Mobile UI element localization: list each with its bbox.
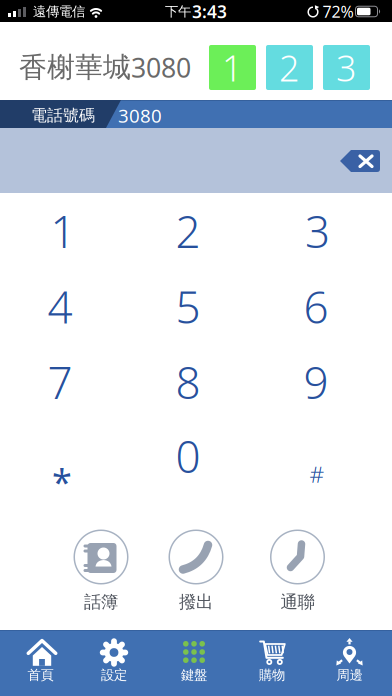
button[interactable]: 8 xyxy=(133,347,243,417)
button[interactable]: 1 xyxy=(209,45,256,90)
button[interactable]: 話簿 xyxy=(56,525,146,615)
staticText: 4 xyxy=(47,277,72,336)
staticText: 下午 xyxy=(165,3,191,20)
button[interactable]: 2 xyxy=(133,196,243,266)
staticText: 3080 xyxy=(118,103,162,128)
button[interactable]: 4 xyxy=(5,271,115,341)
staticText: 通聯 xyxy=(280,591,314,613)
button[interactable]: # xyxy=(262,439,372,509)
staticText: 撥出 xyxy=(179,591,213,613)
staticText: 鍵盤 xyxy=(181,667,207,683)
button[interactable]: 9 xyxy=(261,347,371,417)
staticText: 72% xyxy=(322,1,353,22)
button[interactable]: 鍵盤 xyxy=(155,630,233,696)
staticText: 1 xyxy=(50,202,75,260)
button[interactable]: * xyxy=(7,446,117,516)
button[interactable]: 5 xyxy=(133,271,243,341)
staticText: 3 xyxy=(305,202,330,260)
button[interactable]: 0 xyxy=(133,421,243,491)
button[interactable]: 購物 xyxy=(233,630,311,696)
staticText: 1 xyxy=(222,44,243,91)
staticText: 7 xyxy=(47,353,72,411)
button[interactable]: 通聯 xyxy=(252,525,342,615)
staticText: 設定 xyxy=(101,667,127,683)
staticText: 2 xyxy=(175,202,200,260)
button[interactable]: 3 xyxy=(323,45,370,90)
staticText: # xyxy=(309,459,324,489)
staticText: 3080 xyxy=(131,50,191,85)
staticText: 周邊 xyxy=(336,667,362,683)
staticText: 話簿 xyxy=(84,591,118,613)
staticText: * xyxy=(52,457,72,505)
staticText: 6 xyxy=(303,277,328,336)
staticText: 3 xyxy=(336,44,357,91)
button[interactable]: 1 xyxy=(8,196,118,266)
button[interactable]: 首頁 xyxy=(1,630,80,696)
button[interactable]: 6 xyxy=(261,271,371,341)
staticText: 電話號碼 xyxy=(31,106,95,125)
button[interactable]: Delete xyxy=(340,150,380,172)
staticText: 5 xyxy=(175,277,200,336)
button[interactable]: 設定 xyxy=(75,630,153,696)
staticText: 9 xyxy=(303,353,328,411)
staticText: 香榭華城 xyxy=(19,50,131,85)
button[interactable]: 3 xyxy=(262,196,372,266)
staticText: 首頁 xyxy=(27,667,53,683)
button[interactable]: 2 xyxy=(266,45,313,90)
button[interactable]: 7 xyxy=(5,347,115,417)
button[interactable]: 撥出 xyxy=(151,525,241,615)
staticText: 遠傳電信 xyxy=(33,3,85,20)
staticText: 8 xyxy=(175,353,200,411)
staticText: 0 xyxy=(175,427,200,485)
staticText: 2 xyxy=(279,44,300,91)
staticText: 3:43 xyxy=(192,0,227,23)
staticText: 購物 xyxy=(259,667,285,683)
button[interactable]: 周邊 xyxy=(310,630,389,696)
